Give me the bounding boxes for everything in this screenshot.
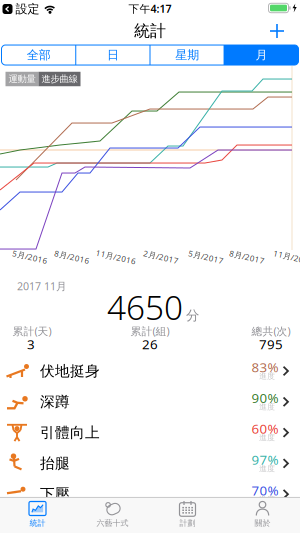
staticText: 計劃 [179,518,195,528]
staticText: 總共(次) [251,324,290,338]
staticText: 深蹲 [40,393,70,411]
staticText: 抬腿 [40,454,70,472]
staticText: 全部 [27,48,51,62]
staticText: 進度 [259,464,275,473]
staticText: 4650 [107,285,183,329]
button[interactable]: 抬腿 [0,448,300,479]
staticText: 進步曲線 [41,73,77,85]
button[interactable]: 關於 [225,498,300,533]
staticText: 90% [251,389,278,407]
staticText: 統計 [29,518,45,528]
button[interactable]: 深蹲 [0,386,300,417]
staticText: 97% [251,451,278,468]
button[interactable]: 伏地挺身 [0,356,300,386]
staticText: 11月/2016 [95,252,136,262]
button[interactable]: 下壓 [0,479,300,510]
button[interactable]: 統計 [0,498,75,533]
staticText: 月 [255,48,267,62]
staticText: 2月/2017 [143,252,179,262]
button[interactable]: 六藝十式 [75,498,150,533]
staticText: 運動量 [8,73,35,85]
staticText: 伏地挺身 [40,362,100,380]
staticText: 下壓 [40,485,70,503]
button[interactable]: 返回設定 [2,2,39,16]
staticText: 累計(組) [130,324,169,338]
staticText: 統計 [134,21,166,41]
staticText: 3 [27,335,35,353]
staticText: 設定 [15,2,39,16]
staticText: 關於 [254,518,270,528]
staticText: 進度 [259,494,275,504]
button[interactable]: 計劃 [150,498,225,533]
staticText: 下午4:17 [128,1,171,16]
staticText: 83% [251,358,278,376]
button[interactable]: 日 [76,45,150,65]
staticText: 引體向上 [40,424,100,442]
staticText: 進度 [259,402,275,412]
staticText: 5月/2016 [12,252,48,262]
staticText: 26 [142,335,158,353]
staticText: 8月/2017 [229,252,265,262]
button[interactable]: 引體向上 [0,417,300,448]
staticText: 累計(天) [12,324,51,338]
staticText: 70% [251,481,278,499]
staticText: 8月/2016 [54,252,90,262]
staticText: 5月/2017 [188,252,224,262]
staticText: 60% [251,420,278,437]
button[interactable]: 新增 [269,23,285,39]
staticText: 2017 11月 [17,279,67,293]
button[interactable]: 全部 [2,45,76,65]
button[interactable]: 月 [224,45,298,65]
staticText: 795 [259,335,283,353]
staticText: 進度 [259,371,275,381]
staticText: 進度 [259,433,275,443]
staticText: 11月/201 [273,252,300,262]
staticText: 星期 [175,48,199,62]
staticText: 分 [186,307,199,324]
staticText: 六藝十式 [96,518,128,528]
staticText: 日 [107,48,119,62]
button[interactable]: 星期 [150,45,224,65]
